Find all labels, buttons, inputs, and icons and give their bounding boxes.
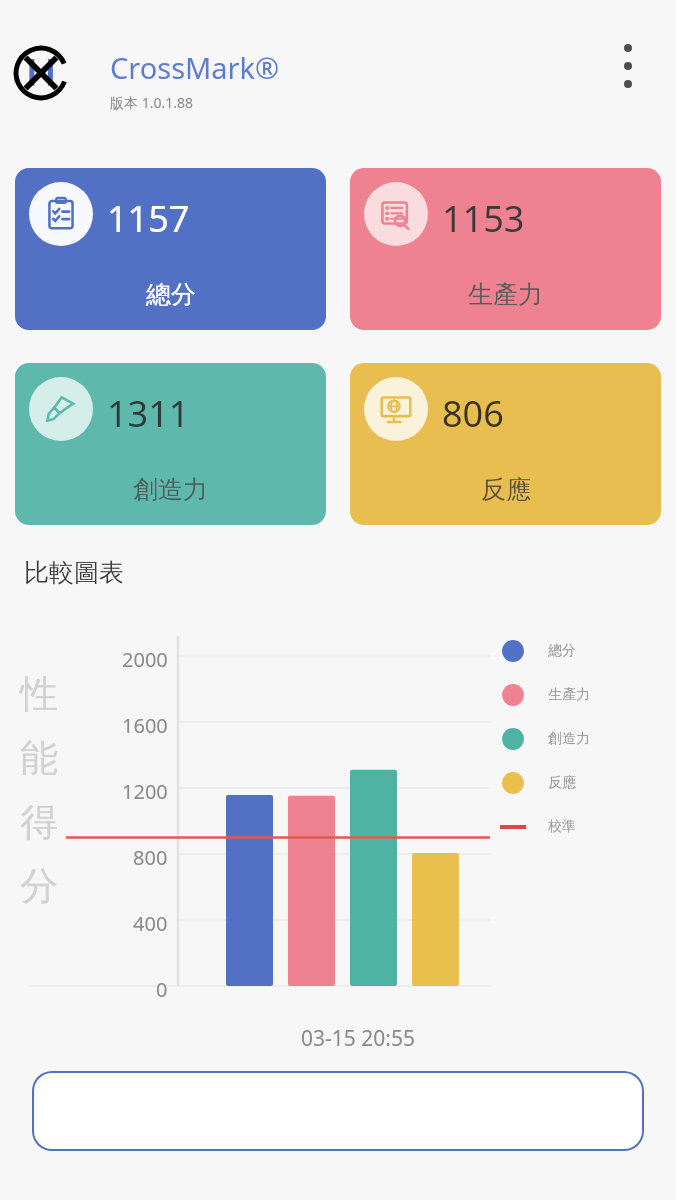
staticText: CrossMark®	[110, 48, 280, 87]
button[interactable]: 1157	[15, 168, 326, 330]
staticText: 03-15 20:55	[301, 1024, 415, 1053]
button[interactable]: More options	[604, 42, 652, 90]
staticText: 創造力	[133, 474, 208, 505]
staticText: 1600	[122, 712, 168, 739]
staticText: 比較圖表	[24, 557, 124, 588]
staticText: 能	[20, 734, 58, 782]
button[interactable]: 1153	[350, 168, 661, 330]
staticText: 反應	[481, 474, 531, 505]
other: CrossMark logo	[12, 44, 70, 102]
button[interactable]: 806	[350, 363, 661, 525]
staticText: 總分	[146, 279, 196, 310]
staticText: 校準	[548, 818, 576, 836]
staticText: 2000	[122, 646, 168, 673]
staticText: 版本 1.0.1.88	[110, 93, 193, 112]
staticText: 1311	[107, 389, 190, 438]
staticText: 創造力	[548, 730, 590, 748]
staticText: 806	[442, 389, 504, 438]
staticText: 1157	[107, 194, 190, 243]
staticText: 得	[20, 798, 58, 846]
button[interactable]	[32, 1071, 644, 1151]
staticText: 反應	[548, 774, 576, 792]
staticText: 生產力	[548, 686, 590, 704]
staticText: 0	[156, 976, 168, 1003]
staticText: 性	[20, 670, 58, 718]
button[interactable]: 1311	[15, 363, 326, 525]
staticText: 400	[133, 910, 168, 937]
staticText: 總分	[548, 642, 576, 660]
staticText: 生產力	[468, 279, 543, 310]
staticText: 1200	[122, 778, 168, 805]
staticText: 分	[20, 862, 58, 910]
staticText: 1153	[442, 194, 525, 243]
staticText: 800	[133, 844, 168, 871]
